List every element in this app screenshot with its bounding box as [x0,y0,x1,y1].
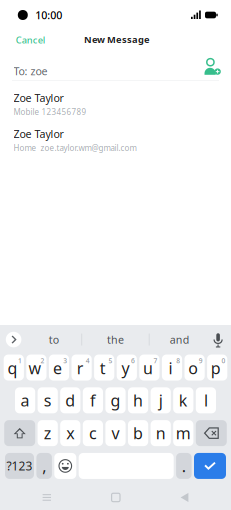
button[interactable]: and [150,329,202,351]
staticText: o [188,357,198,379]
button[interactable]: c [83,420,103,446]
staticText: and [170,332,190,347]
staticText: 3 [63,356,67,365]
button[interactable]: More suggestions [0,325,26,354]
button[interactable]: Back [163,487,206,508]
button[interactable]: d [60,387,80,413]
button[interactable]: Shift [4,420,35,446]
button[interactable]: z [38,420,58,446]
staticText: Zoe Taylor [13,91,63,105]
staticText: Cancel [16,34,46,46]
staticText: l [204,390,208,411]
button[interactable]: g [105,387,126,413]
button[interactable]: Send [194,453,226,479]
button[interactable]: m [173,420,193,446]
staticText: b [133,422,143,444]
staticText: n [156,422,166,444]
staticText: z [44,422,52,444]
button[interactable]: j [151,387,171,413]
staticText: q [7,357,17,379]
staticText: m [176,422,191,444]
button[interactable]: Cancel [0,31,55,53]
button[interactable]: n [151,420,171,446]
staticText: v [111,422,119,444]
button[interactable]: k [173,387,193,413]
staticText: u [143,357,153,379]
button[interactable]: i [162,355,182,381]
staticText: i [169,357,173,379]
staticText: t [100,357,106,379]
staticText: a [21,390,30,411]
button[interactable]: l [196,387,216,413]
staticText: x [66,422,74,444]
button[interactable]: Recents [25,488,69,507]
staticText: g [110,390,120,411]
staticText: 6 [131,356,135,365]
button[interactable]: w [26,355,46,381]
staticText: New Message [84,33,150,46]
staticText: r [77,357,84,379]
staticText: 7 [154,356,158,365]
staticText: 1 [18,356,22,365]
staticText: c [89,422,97,444]
button[interactable]: Home [94,487,138,508]
staticText: w [28,357,41,379]
button[interactable]: u [139,355,159,381]
staticText: k [179,390,188,411]
button[interactable]: e [49,355,69,381]
staticText: d [65,390,75,411]
staticText: h [133,390,143,411]
staticText: , [42,455,46,476]
staticText: Zoe Taylor [13,127,63,141]
staticText: the [107,332,124,347]
button[interactable]: Zoe Taylor [0,122,231,158]
button[interactable]: q [4,355,24,381]
staticText: 2 [41,356,45,365]
staticText: to [49,332,59,347]
button[interactable]: t [94,355,114,381]
button[interactable]: b [128,420,148,446]
button[interactable]: Voice input [210,326,231,353]
staticText: . [182,455,186,476]
staticText: 9 [199,356,203,365]
staticText: y [121,357,129,379]
staticText: 4 [86,356,90,365]
staticText: Home zoe.taylor.wm@gmail.com [13,142,136,153]
staticText: 0 [221,356,225,365]
staticText: j [159,390,163,411]
button[interactable]: Backspace [196,420,227,446]
staticText: 5 [108,356,112,365]
staticText: 10:00 [35,8,62,22]
button[interactable]: Zoe Taylor [0,86,231,122]
button[interactable]: o [184,355,205,381]
button[interactable]: a [15,387,35,413]
staticText: ?123 [6,458,32,474]
button[interactable]: h [128,387,148,413]
button[interactable]: p [207,355,227,381]
staticText: s [44,390,52,411]
staticText: Mobile 123456789 [13,106,86,117]
staticText: p [211,357,221,379]
button[interactable]: x [60,420,80,446]
button[interactable]: f [83,387,103,413]
button[interactable]: , [36,453,52,479]
button[interactable]: . [176,453,192,479]
button[interactable]: Add contact [193,56,231,78]
button[interactable]: to [26,329,81,351]
button[interactable]: s [38,387,58,413]
button[interactable]: v [105,420,126,446]
button[interactable]: the [82,329,149,351]
staticText: 8 [176,356,180,365]
staticText: f [90,390,96,411]
button[interactable]: ?123 [5,453,34,479]
button[interactable]: Emoji [54,453,76,479]
staticText: e [53,357,62,379]
button[interactable]: y [117,355,137,381]
staticText: To: zoe [13,64,47,78]
button[interactable]: r [71,355,92,381]
